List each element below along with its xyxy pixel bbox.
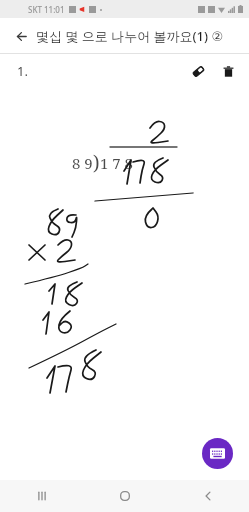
staticText: SKT 11:01 [28,4,65,15]
staticText: 1. [17,62,28,80]
staticText: ) [93,150,100,176]
button[interactable]: Recent apps [0,480,83,512]
button[interactable]: Back [166,480,249,512]
button[interactable]: Home [83,480,166,512]
button[interactable]: Keyboard [202,438,233,469]
staticText: 1 7 8 [100,153,133,173]
staticText: 몇십 몇 으로 나누어 볼까요(1) ② [36,27,224,45]
staticText: 8 9 [72,153,93,173]
button[interactable]: Delete [215,58,241,84]
button[interactable]: Eraser [185,58,211,84]
button[interactable]: Back [6,22,34,50]
